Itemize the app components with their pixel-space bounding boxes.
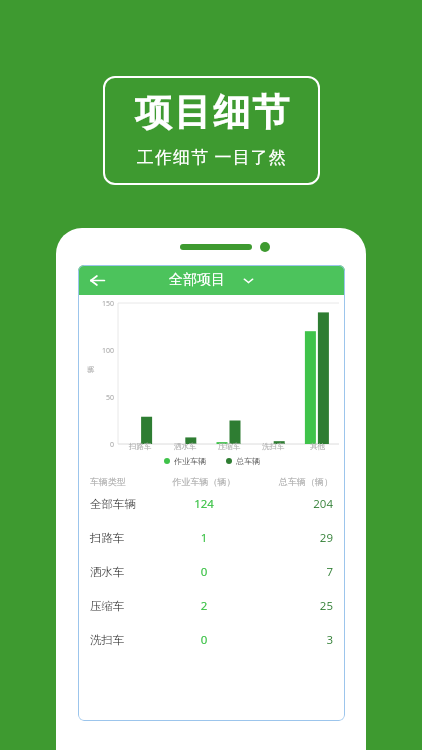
staticText: 其他 [310, 442, 325, 451]
staticText: 压缩车 [218, 442, 241, 451]
staticText: 洗扫车 [90, 633, 161, 647]
staticText: 150 [94, 299, 114, 309]
staticText: 204 [247, 496, 333, 512]
staticText: 124 [161, 496, 247, 512]
staticText: 25 [247, 598, 333, 614]
button[interactable]: 洒水车 [78, 555, 345, 589]
staticText: 0 [94, 440, 114, 450]
button[interactable]: 洗扫车 [78, 623, 345, 657]
staticText: 辆 [86, 366, 95, 373]
button[interactable]: Back [84, 267, 110, 293]
staticText: 扫路车 [90, 531, 161, 545]
button[interactable]: 全部项目 [169, 271, 254, 289]
staticText: 作业车辆（辆） [161, 476, 247, 487]
staticText: 50 [94, 393, 114, 403]
staticText: 3 [247, 632, 333, 648]
staticText: 扫路车 [129, 442, 152, 451]
staticText: 洗扫车 [262, 442, 285, 451]
staticText: 全部项目 [169, 271, 225, 289]
button[interactable]: 压缩车 [78, 589, 345, 623]
staticText: 工作细节 一目了然 [137, 145, 287, 168]
staticText: 作业车辆 [174, 456, 206, 466]
staticText: 洒水车 [174, 442, 197, 451]
staticText: 项目细节 [134, 89, 290, 136]
button[interactable]: 全部车辆 [78, 487, 345, 521]
button[interactable]: 扫路车 [78, 521, 345, 555]
staticText: 29 [247, 530, 333, 546]
staticText: 全部车辆 [90, 497, 161, 511]
staticText: 压缩车 [90, 599, 161, 613]
staticText: 1 [161, 530, 247, 546]
staticText: 0 [161, 564, 247, 580]
staticText: 7 [247, 564, 333, 580]
staticText: 总车辆（辆） [247, 476, 333, 487]
staticText: 0 [161, 632, 247, 648]
staticText: 100 [94, 346, 114, 356]
staticText: 洒水车 [90, 565, 161, 579]
staticText: 车辆类型 [90, 476, 161, 487]
staticText: 2 [161, 598, 247, 614]
staticText: 总车辆 [236, 456, 260, 466]
